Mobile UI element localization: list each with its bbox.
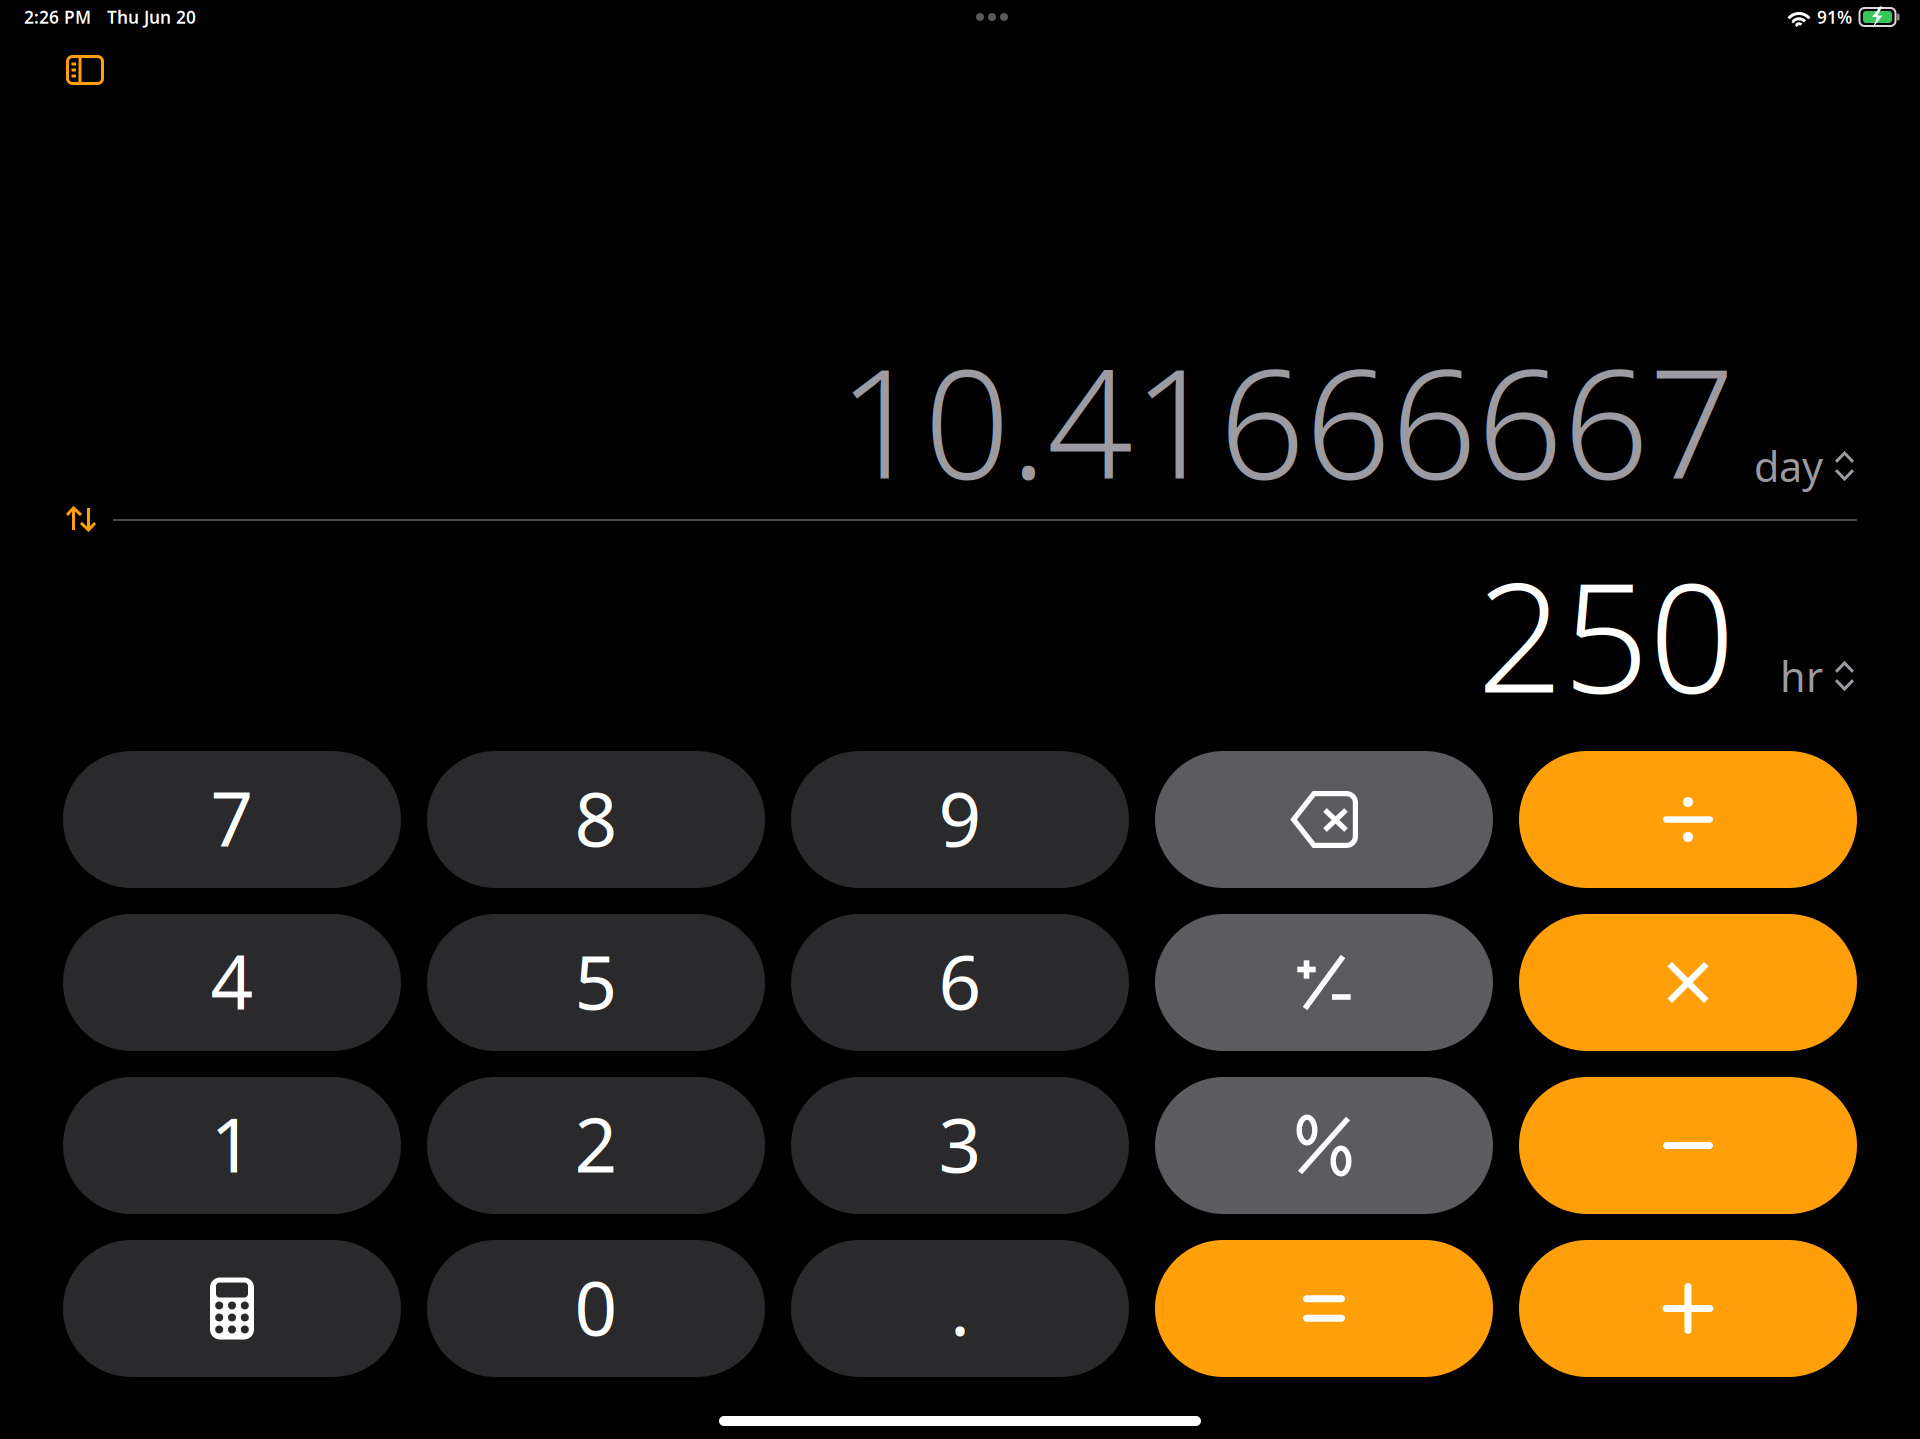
staticText: 8 [574, 768, 617, 867]
button[interactable]: 9 [791, 751, 1129, 888]
button[interactable]: 1 [63, 1077, 401, 1214]
button[interactable]: Plus Minus [1155, 914, 1493, 1051]
staticText: 2 [574, 1094, 617, 1193]
button[interactable]: day [1754, 446, 1874, 486]
staticText: hr [1780, 649, 1823, 703]
button[interactable]: . [791, 1240, 1129, 1377]
staticText: 91% [1817, 5, 1852, 28]
staticText: 1 [210, 1094, 253, 1193]
button[interactable]: Percent [1155, 1077, 1493, 1214]
staticText: . [950, 1257, 970, 1356]
staticText: 2:26 PM [24, 5, 91, 28]
button[interactable]: Divide [1519, 751, 1857, 888]
staticText: day [1754, 439, 1823, 493]
staticText: 3 [938, 1094, 981, 1193]
button[interactable]: 0 [427, 1240, 765, 1377]
button[interactable]: 7 [63, 751, 401, 888]
staticText: 9 [938, 768, 981, 867]
button[interactable]: Delete [1155, 751, 1493, 888]
button[interactable]: Add [1519, 1240, 1857, 1377]
staticText: 7 [210, 768, 253, 867]
button[interactable]: Equals [1155, 1240, 1493, 1377]
staticText: 250 [1477, 534, 1735, 734]
button[interactable]: Multiply [1519, 914, 1857, 1051]
button[interactable]: 4 [63, 914, 401, 1051]
button[interactable]: 6 [791, 914, 1129, 1051]
staticText: 10.41666667 [838, 320, 1735, 520]
button[interactable]: Calculator [63, 1240, 401, 1377]
button[interactable]: Subtract [1519, 1077, 1857, 1214]
button[interactable]: 3 [791, 1077, 1129, 1214]
button[interactable]: 2 [427, 1077, 765, 1214]
staticText: 5 [574, 931, 617, 1030]
button[interactable]: 5 [427, 914, 765, 1051]
staticText: 4 [210, 931, 253, 1030]
button[interactable]: 8 [427, 751, 765, 888]
button[interactable]: Show Sidebar [50, 40, 120, 100]
button[interactable]: hr [1780, 656, 1880, 696]
button[interactable]: Swap units [64, 505, 98, 533]
staticText: 6 [938, 931, 981, 1030]
staticText: 0 [574, 1257, 617, 1356]
staticText: Thu Jun 20 [107, 5, 196, 28]
